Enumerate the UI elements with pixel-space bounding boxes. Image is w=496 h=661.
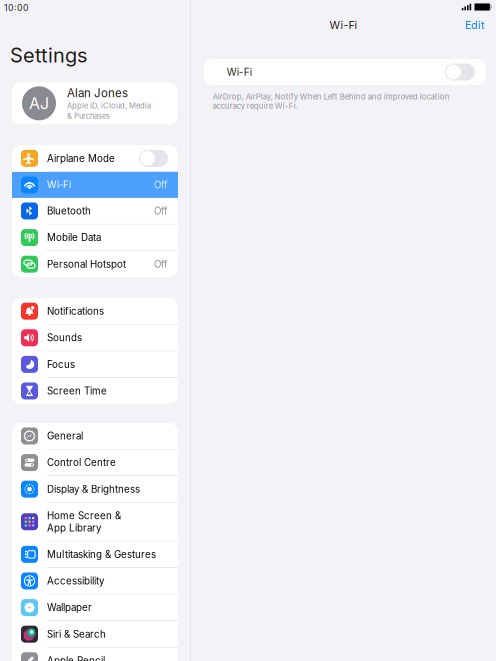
staticText: 10:00 (4, 2, 29, 13)
button[interactable]: Apple Pencil (12, 648, 178, 661)
button[interactable]: Notifications (12, 298, 178, 324)
button[interactable]: Mobile Data (12, 224, 178, 250)
button[interactable]: AJ (12, 82, 178, 124)
staticText: Off (154, 205, 168, 217)
button[interactable]: Sounds (12, 325, 178, 351)
staticText: Airplane Mode (47, 152, 115, 164)
staticText: Control Centre (47, 457, 116, 468)
staticText: AJ (29, 94, 49, 113)
staticText: Screen Time (47, 385, 107, 397)
staticText: Wi-Fi (47, 179, 71, 191)
staticText: & Purchases (67, 111, 110, 120)
staticText: App Library (47, 522, 101, 534)
staticText: AirDrop, AirPlay, Notify When Left Behin… (213, 92, 450, 111)
button[interactable]: Home Screen & (12, 503, 178, 541)
button[interactable]: Control Centre (12, 449, 178, 475)
staticText: Multitasking & Gestures (47, 548, 156, 560)
staticText: Wallpaper (47, 602, 92, 613)
staticText: Off (154, 258, 168, 270)
staticText: Home Screen & (47, 510, 121, 521)
staticText: Off (154, 179, 168, 191)
button[interactable]: Siri & Search (12, 621, 178, 647)
staticText: Apple Pencil (47, 655, 105, 661)
staticText: Mobile Data (47, 232, 101, 243)
button[interactable]: Bluetooth (12, 198, 178, 224)
staticText: Apple ID, iCloud, Media (67, 101, 151, 110)
staticText: Settings (10, 43, 87, 67)
staticText: Edit (465, 18, 484, 31)
button[interactable]: Edit (465, 18, 496, 31)
button[interactable]: Wi-Fi (12, 172, 178, 198)
staticText: Siri & Search (47, 628, 106, 640)
button[interactable]: Personal Hotspot (12, 251, 178, 277)
button[interactable]: Accessibility (12, 568, 178, 594)
staticText: Focus (47, 358, 75, 370)
staticText: Personal Hotspot (47, 258, 126, 270)
button[interactable]: Wallpaper (12, 594, 178, 620)
staticText: Sounds (47, 332, 82, 344)
button[interactable]: General (12, 423, 178, 449)
button[interactable]: Multitasking & Gestures (12, 541, 178, 567)
button[interactable]: Screen Time (12, 378, 178, 404)
staticText: Bluetooth (47, 205, 91, 217)
staticText: General (47, 430, 83, 442)
staticText: Accessibility (47, 575, 104, 587)
button[interactable]: Airplane Mode (12, 145, 178, 171)
button[interactable]: Focus (12, 351, 178, 377)
button[interactable]: Display & Brightness (12, 476, 178, 502)
staticText: Wi-Fi (227, 66, 252, 78)
button[interactable]: Wi-Fi (204, 59, 486, 85)
staticText: Alan Jones (67, 86, 128, 100)
staticText: Display & Brightness (47, 483, 140, 495)
staticText: Notifications (47, 305, 104, 317)
staticText: Wi-Fi (329, 18, 357, 31)
